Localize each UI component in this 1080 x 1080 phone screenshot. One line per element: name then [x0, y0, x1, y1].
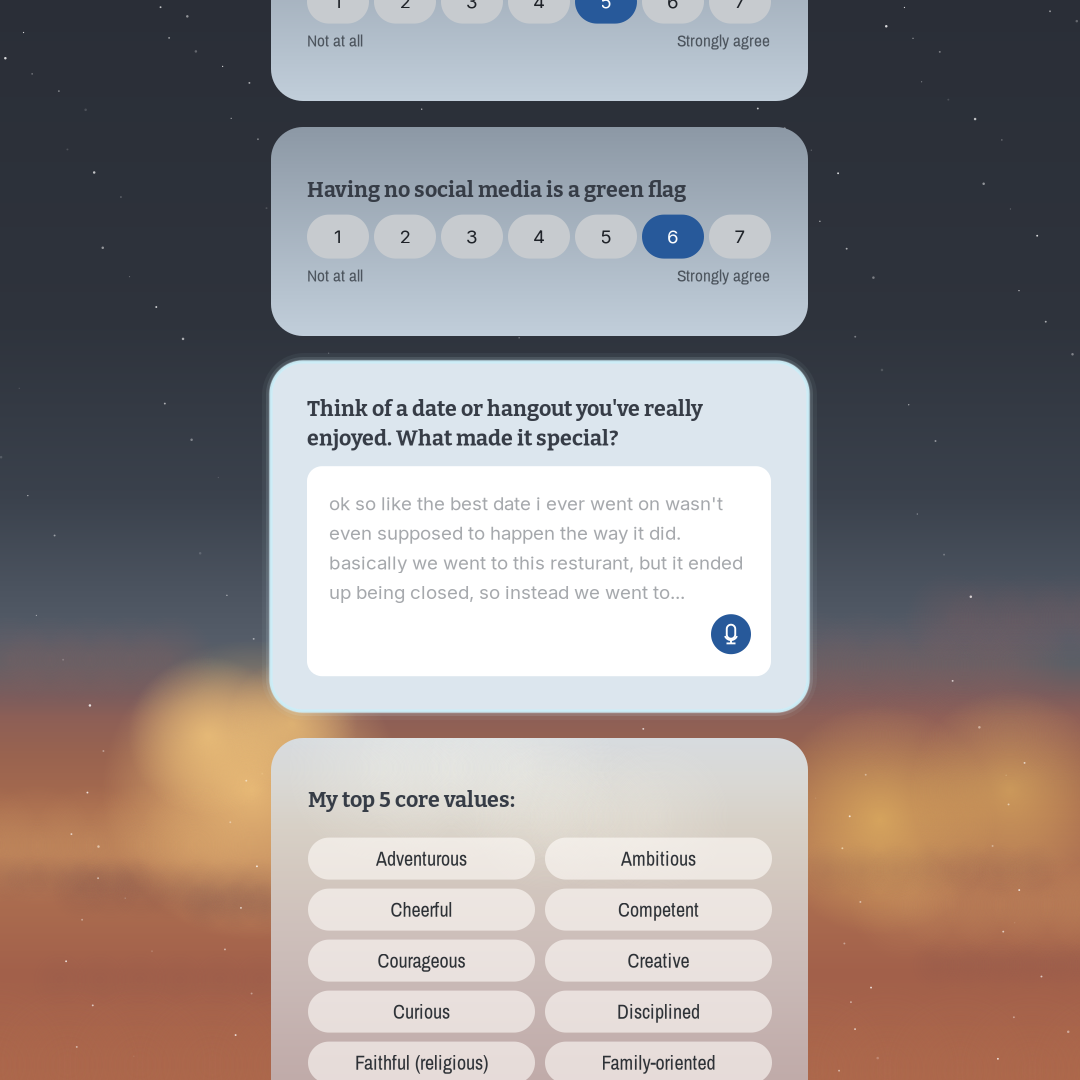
button[interactable]: Cheerful	[308, 889, 535, 931]
button[interactable]: 5	[575, 0, 637, 24]
staticText: ok so like the best date i ever went on …	[329, 492, 723, 515]
staticText: Having no social media is a green flag	[307, 177, 686, 203]
button[interactable]: 7	[709, 215, 771, 259]
staticText: up being closed, so instead we went to..…	[329, 581, 685, 604]
staticText: Creative	[627, 947, 689, 974]
staticText: 4	[533, 225, 545, 248]
button[interactable]: 2	[374, 215, 436, 259]
button[interactable]: Competent	[545, 889, 772, 931]
staticText: Strongly agree	[677, 264, 770, 287]
button[interactable]: Creative	[545, 940, 772, 982]
staticText: Not at all	[307, 29, 363, 52]
staticText: Courageous	[377, 947, 465, 974]
staticText: Competent	[618, 896, 699, 923]
staticText: 4	[533, 0, 545, 13]
button[interactable]: Ambitious	[545, 838, 772, 880]
staticText: Cheerful	[390, 896, 452, 923]
staticText: 2	[399, 0, 410, 13]
staticText: 7	[734, 225, 745, 248]
staticText: enjoyed. What made it special?	[307, 426, 619, 451]
staticText: basically we went to this resturant, but…	[329, 551, 743, 574]
staticText: Disciplined	[617, 998, 700, 1025]
staticText: Ambitious	[621, 845, 696, 872]
button[interactable]: 4	[508, 215, 570, 259]
staticText: My top 5 core values:	[308, 787, 515, 813]
staticText: Adventurous	[376, 845, 467, 872]
button[interactable]: Curious	[308, 991, 535, 1033]
staticText: 3	[466, 0, 478, 13]
button[interactable]: 2	[374, 0, 436, 24]
staticText: 1	[334, 225, 342, 248]
button[interactable]: 7	[709, 0, 771, 24]
button[interactable]: 3	[441, 215, 503, 259]
button[interactable]: Record voice answer	[711, 614, 751, 654]
button[interactable]: 4	[508, 0, 570, 24]
button[interactable]: Adventurous	[308, 838, 535, 880]
button[interactable]: 3	[441, 0, 503, 24]
staticText: Not at all	[307, 264, 363, 287]
button[interactable]: Faithful (religious)	[308, 1042, 535, 1080]
button[interactable]: 6	[642, 0, 704, 24]
button[interactable]: Family-oriented	[545, 1042, 772, 1080]
button[interactable]: 6	[642, 215, 704, 259]
staticText: Strongly agree	[677, 29, 770, 52]
staticText: 5	[600, 0, 611, 13]
button[interactable]: Disciplined	[545, 991, 772, 1033]
staticText: even supposed to happen the way it did.	[329, 522, 681, 544]
button[interactable]: 5	[575, 215, 637, 259]
staticText: Curious	[393, 998, 450, 1025]
staticText: 7	[734, 0, 745, 13]
staticText: 1	[334, 0, 342, 13]
staticText: 6	[667, 0, 679, 13]
staticText: 2	[399, 225, 410, 248]
staticText: 6	[667, 225, 679, 248]
staticText: Think of a date or hangout you've really	[307, 396, 703, 422]
button[interactable]: 1	[307, 0, 369, 24]
staticText: Faithful (religious)	[355, 1049, 488, 1076]
staticText: 5	[600, 225, 611, 248]
staticText: 3	[466, 225, 478, 248]
staticText: Family-oriented	[601, 1049, 715, 1076]
button[interactable]: Courageous	[308, 940, 535, 982]
button[interactable]: 1	[307, 215, 369, 259]
